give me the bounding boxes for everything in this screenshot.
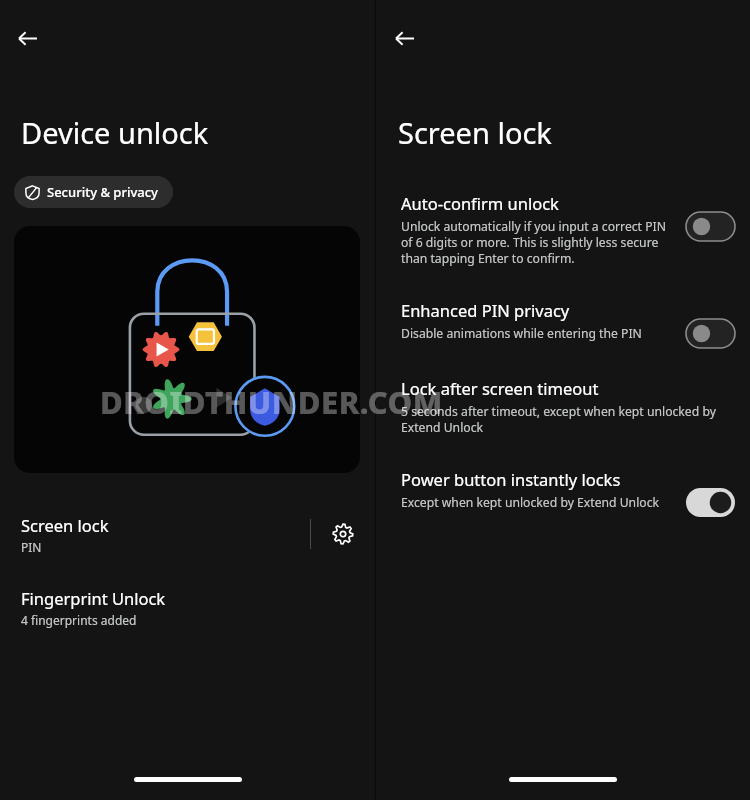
staticText: Disable animations while entering the PI… [401,325,642,342]
button[interactable]: Auto-confirm unlock [376,190,750,272]
button[interactable]: Screen lock [0,505,375,563]
button[interactable]: Power button instantly locks [684,486,736,518]
staticText: Unlock automatically if you input a corr… [401,218,666,266]
button[interactable]: Back [389,23,419,53]
staticText: DROIDTHUNDER.COM [100,381,443,423]
button[interactable]: Lock after screen timeout [376,375,750,441]
button[interactable]: Enhanced PIN privacy [684,317,736,349]
button[interactable]: Fingerprint Unlock [0,583,375,638]
staticText: Screen lock [398,113,552,152]
button[interactable]: Auto-confirm unlock [684,210,736,242]
staticText: 5 seconds after timeout, except when kep… [401,403,716,435]
staticText: PIN [21,539,42,555]
button[interactable]: Back [12,23,42,53]
staticText: Security & privacy [47,183,158,201]
staticText: Auto-confirm unlock [401,192,559,214]
staticText: 4 fingerprints added [21,612,137,628]
staticText: Device unlock [21,113,209,152]
staticText: Fingerprint Unlock [21,587,166,609]
button[interactable]: Security & privacy [14,176,173,208]
staticText: Except when kept unlocked by Extend Unlo… [401,494,660,511]
staticText: Lock after screen timeout [401,377,599,399]
button[interactable]: Enhanced PIN privacy [376,297,750,355]
staticText: Screen lock [21,514,109,536]
button[interactable]: Screen lock settings [311,505,375,563]
staticText: Enhanced PIN privacy [401,299,570,321]
staticText: Power button instantly locks [401,468,621,490]
button[interactable]: Power button instantly locks [376,466,750,524]
